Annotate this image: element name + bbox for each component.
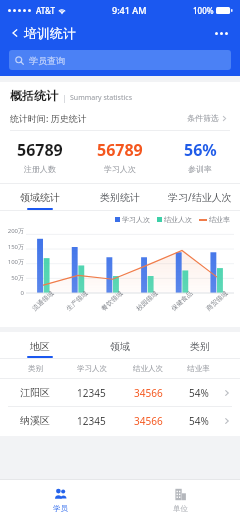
staticText: 纳溪区: [20, 414, 50, 427]
staticText: 学习人次: [104, 164, 136, 174]
button[interactable]: More options: [210, 22, 232, 44]
button[interactable]: 纳溪区: [0, 407, 240, 434]
staticText: 50万: [11, 274, 24, 282]
button[interactable]: 学员查询: [9, 50, 231, 70]
staticText: 56789: [17, 139, 63, 161]
button[interactable]: 56789: [80, 138, 160, 175]
staticText: 结业率: [187, 364, 210, 373]
button[interactable]: 学员: [0, 480, 120, 520]
button[interactable]: 领域: [80, 334, 160, 358]
staticText: 12345: [77, 414, 106, 428]
staticText: 学员: [53, 504, 68, 513]
staticText: 12345: [77, 386, 106, 400]
staticText: 200万: [7, 227, 24, 235]
staticText: 54%: [189, 386, 209, 400]
staticText: 单位: [173, 504, 188, 513]
staticText: 54%: [189, 414, 209, 428]
staticText: 校园领域: [135, 289, 159, 313]
staticText: 结业人次: [133, 364, 163, 373]
button[interactable]: 学习/结业人次: [160, 184, 240, 210]
staticText: 9:41 AM: [112, 4, 147, 16]
staticText: 34566: [134, 386, 163, 400]
staticText: 统计时间: 历史统计: [10, 112, 87, 124]
staticText: 56%: [184, 139, 217, 161]
button[interactable]: 地区: [0, 334, 80, 358]
staticText: 100%: [193, 5, 214, 16]
staticText: 100万: [7, 258, 24, 266]
staticText: 结业人次: [164, 215, 192, 224]
staticText: 生产领域: [65, 289, 89, 313]
button[interactable]: 江阳区: [0, 379, 240, 406]
button[interactable]: Back: [8, 23, 78, 43]
staticText: 餐饮领域: [100, 289, 124, 313]
staticText: 类别统计: [100, 191, 140, 204]
staticText: 注册人数: [24, 164, 56, 174]
staticText: 学员查询: [29, 55, 65, 66]
button[interactable]: 单位: [120, 480, 240, 520]
button[interactable]: 类别: [160, 334, 240, 358]
staticText: 领域统计: [20, 191, 60, 204]
staticText: 地区: [30, 340, 50, 353]
staticText: 34566: [134, 414, 163, 428]
staticText: 0: [20, 289, 24, 297]
staticText: 类别: [190, 340, 210, 353]
staticText: 学习/结业人次: [168, 190, 232, 204]
button[interactable]: 领域统计: [0, 184, 80, 210]
staticText: 条件筛选: [187, 113, 219, 123]
button[interactable]: 56789: [0, 138, 80, 175]
staticText: 56789: [97, 139, 143, 161]
staticText: 150万: [7, 243, 24, 251]
staticText: 保健食品: [170, 289, 194, 313]
staticText: 培训统计: [24, 25, 76, 41]
staticText: 领域: [110, 340, 130, 353]
staticText: 流通领域: [31, 289, 55, 313]
button[interactable]: 56%: [160, 138, 240, 175]
button[interactable]: 条件筛选: [185, 111, 230, 125]
staticText: 结业率: [209, 215, 230, 224]
staticText: 概括统计: [10, 88, 58, 103]
staticText: 商贸领域: [205, 289, 229, 313]
staticText: 类别: [28, 364, 43, 373]
staticText: 参训率: [188, 164, 212, 174]
staticText: AT&T: [36, 5, 55, 16]
button[interactable]: 类别统计: [80, 184, 160, 210]
staticText: Summary statistics: [70, 93, 133, 103]
staticText: 江阳区: [20, 386, 50, 399]
staticText: 学习人次: [122, 215, 150, 224]
staticText: 学习人次: [77, 364, 107, 373]
